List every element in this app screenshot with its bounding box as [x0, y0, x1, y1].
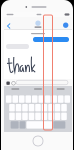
button[interactable]	[25, 95, 31, 103]
button[interactable]	[42, 104, 47, 111]
button[interactable]	[58, 95, 63, 103]
button[interactable]: FaceTime	[61, 21, 70, 29]
button[interactable]	[48, 104, 54, 111]
button[interactable]: Numbers	[11, 121, 19, 129]
button[interactable]	[32, 95, 37, 103]
button[interactable]	[35, 104, 41, 111]
button[interactable]	[64, 95, 70, 103]
button[interactable]	[4, 88, 27, 90]
button[interactable]	[38, 95, 44, 103]
button[interactable]	[12, 95, 18, 103]
button[interactable]	[48, 113, 54, 120]
button[interactable]	[45, 95, 50, 103]
button[interactable]: space	[26, 121, 52, 129]
button[interactable]: return	[53, 121, 65, 129]
button[interactable]	[22, 104, 28, 111]
button[interactable]	[51, 95, 57, 103]
button[interactable]	[61, 113, 67, 120]
button[interactable]: Apps	[10, 80, 16, 86]
button[interactable]	[35, 113, 41, 120]
button[interactable]	[19, 95, 24, 103]
button[interactable]	[9, 104, 15, 111]
button[interactable]	[9, 113, 15, 120]
button[interactable]	[42, 113, 47, 120]
button[interactable]: Back	[5, 21, 12, 30]
button[interactable]: Camera	[5, 80, 11, 86]
button[interactable]	[27, 88, 49, 90]
button[interactable]	[61, 104, 67, 111]
button[interactable]	[22, 113, 28, 120]
button[interactable]	[49, 88, 72, 90]
button[interactable]: Emoji	[19, 121, 25, 129]
button[interactable]	[6, 95, 11, 103]
